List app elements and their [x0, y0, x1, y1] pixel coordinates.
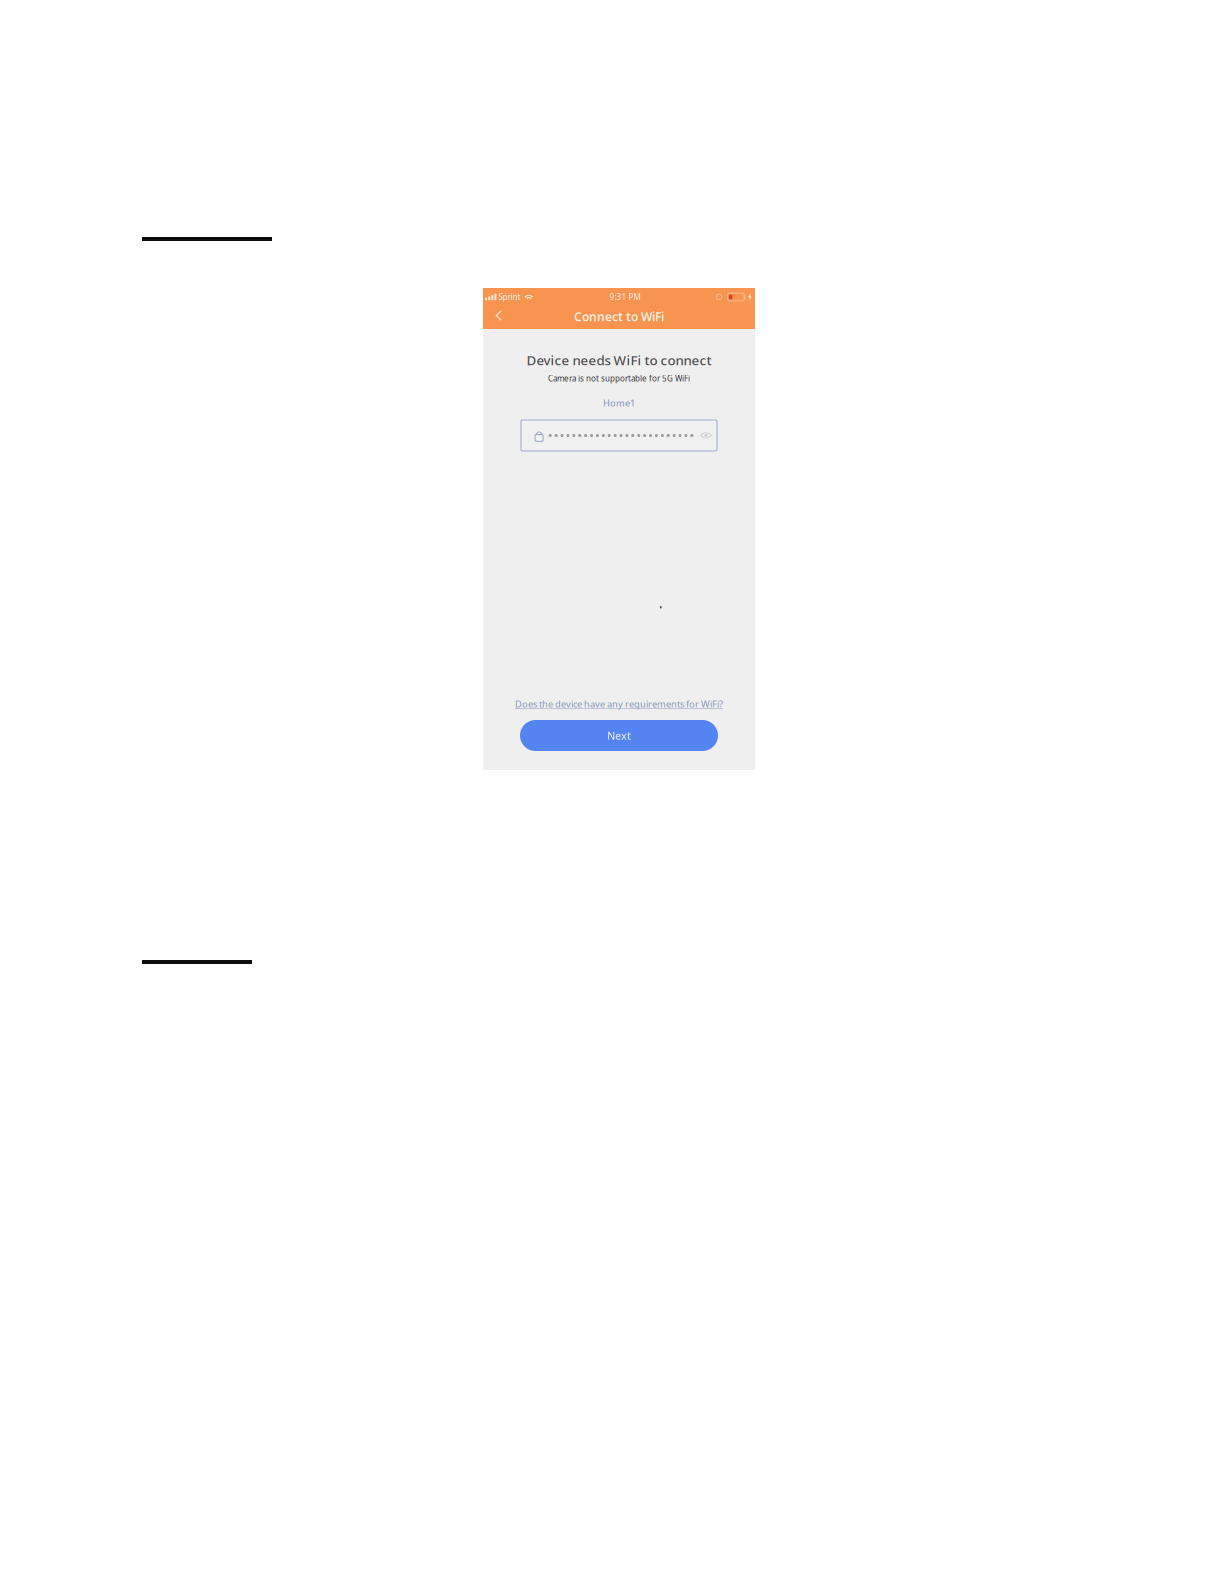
staticText: Connect to WiFi — [574, 308, 664, 324]
staticText: Next — [607, 728, 631, 743]
button[interactable]: Does the device have any requirements fo… — [483, 698, 755, 710]
staticText: Does the device have any requirements fo… — [515, 698, 723, 710]
button[interactable]: Back — [483, 308, 514, 327]
staticText: Camera is not supportable for 5G WiFi — [548, 373, 690, 384]
staticText: Device needs WiFi to connect — [526, 351, 711, 369]
button[interactable]: Show password — [696, 424, 716, 446]
staticText: Sprint — [498, 292, 520, 302]
staticText: 9:31 PM — [609, 292, 640, 302]
button[interactable]: Next — [520, 720, 718, 751]
staticText: Home1 — [603, 397, 635, 409]
